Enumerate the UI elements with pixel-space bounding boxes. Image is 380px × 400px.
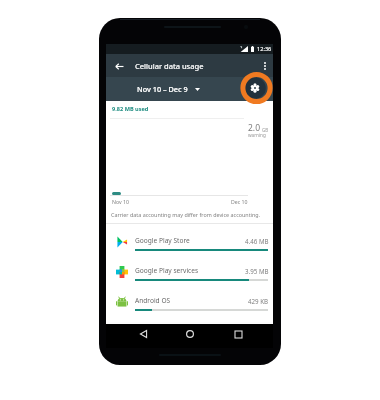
- staticText: 9.82 MB used: [112, 105, 149, 113]
- staticText: 429 KB: [248, 297, 269, 305]
- button[interactable]: Google Play services: [106, 262, 273, 292]
- staticText: Nov 10: [112, 198, 129, 205]
- button[interactable]: Back: [109, 56, 129, 76]
- button[interactable]: Home: [181, 325, 199, 343]
- button[interactable]: Nov 10 – Dec 9: [137, 84, 200, 94]
- staticText: 3.95 MB: [245, 267, 269, 275]
- staticText: Carrier data accounting may differ from …: [111, 211, 261, 218]
- staticText: GB: [262, 127, 269, 133]
- button[interactable]: Recent apps: [229, 325, 247, 343]
- staticText: 12:36: [257, 45, 272, 53]
- button[interactable]: More options: [257, 58, 273, 74]
- button[interactable]: Android OS: [106, 292, 273, 322]
- staticText: 2.0: [248, 122, 261, 134]
- button[interactable]: Back: [134, 325, 152, 343]
- staticText: Nov 10 – Dec 9: [137, 84, 188, 94]
- staticText: Cellular data usage: [135, 61, 204, 71]
- button[interactable]: Settings: [244, 77, 266, 99]
- button[interactable]: Google Play Store: [106, 232, 273, 262]
- staticText: Dec 10: [231, 198, 248, 205]
- staticText: Google Play Store: [135, 236, 190, 245]
- staticText: warning: [248, 132, 266, 138]
- staticText: 4.46 MB: [245, 237, 269, 245]
- staticText: Google Play services: [135, 266, 199, 275]
- staticText: Android OS: [135, 296, 171, 305]
